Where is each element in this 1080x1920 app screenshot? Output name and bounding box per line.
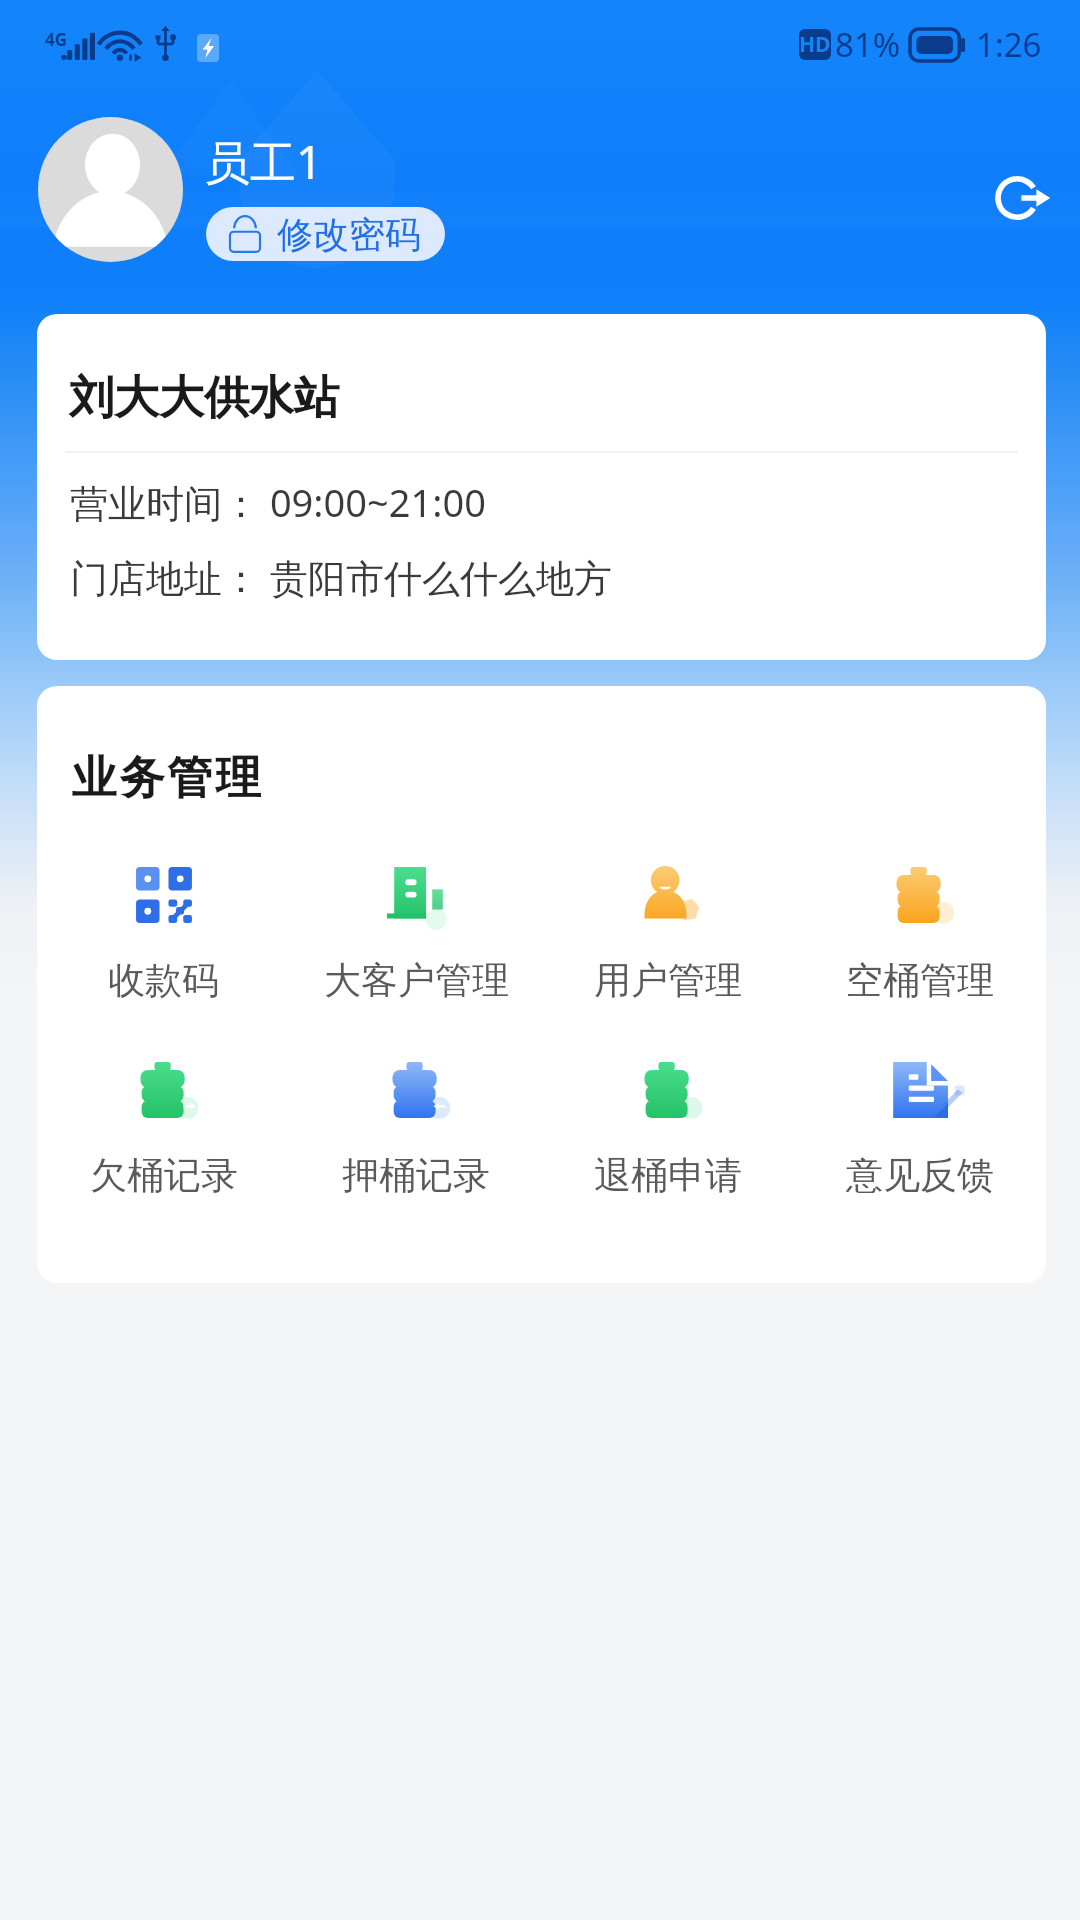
staticText: 修改密码: [277, 212, 421, 257]
staticText: 收款码: [108, 957, 219, 1004]
button[interactable]: 修改密码: [206, 207, 445, 261]
button[interactable]: 押桶记录: [290, 1047, 542, 1242]
staticText: 退桶申请: [594, 1152, 742, 1199]
button[interactable]: Logout: [974, 150, 1070, 246]
button[interactable]: 大客户管理: [290, 852, 542, 1047]
button[interactable]: Avatar: [38, 117, 183, 262]
button[interactable]: 欠桶记录: [37, 1047, 290, 1242]
button[interactable]: 刘大大供水站: [37, 314, 1046, 660]
staticText: 业务管理: [70, 750, 262, 807]
staticText: 81%: [835, 22, 901, 67]
staticText: 刘大大供水站: [69, 370, 339, 427]
button[interactable]: 空桶管理: [794, 852, 1046, 1047]
staticText: 意见反馈: [846, 1152, 994, 1199]
button[interactable]: 退桶申请: [542, 1047, 794, 1242]
staticText: 4G: [45, 28, 68, 51]
staticText: 押桶记录: [342, 1152, 490, 1199]
staticText: 营业时间： 09:00~21:00: [70, 476, 486, 528]
staticText: 大客户管理: [324, 957, 509, 1004]
staticText: 员工1: [204, 130, 323, 193]
staticText: 1:26: [976, 22, 1042, 67]
staticText: HD: [799, 30, 831, 59]
staticText: 空桶管理: [846, 957, 994, 1004]
staticText: 用户管理: [594, 957, 742, 1004]
staticText: 门店地址： 贵阳市什么什么地方: [70, 551, 612, 603]
button[interactable]: 用户管理: [542, 852, 794, 1047]
button[interactable]: 意见反馈: [794, 1047, 1046, 1242]
staticText: 欠桶记录: [90, 1152, 238, 1199]
button[interactable]: 收款码: [37, 852, 290, 1047]
